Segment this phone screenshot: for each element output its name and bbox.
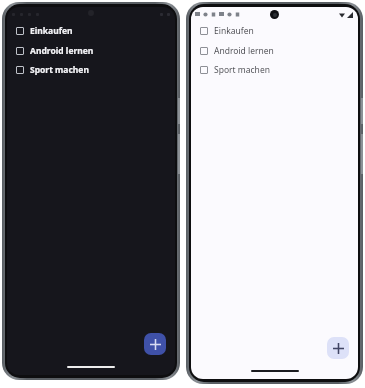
button[interactable]: Sport machen [191, 64, 358, 76]
staticText: Sport machen [214, 64, 270, 76]
button[interactable]: Einkaufen [191, 25, 358, 37]
staticText: Einkaufen [214, 25, 254, 37]
staticText: Android lernen [214, 45, 274, 57]
staticText: Einkaufen [30, 25, 73, 37]
button[interactable]: Einkaufen [7, 25, 175, 37]
button[interactable]: Neue Aufgabe hinzufügen [327, 337, 349, 359]
button[interactable]: Android lernen [7, 45, 175, 57]
button[interactable]: Neue Aufgabe hinzufügen [144, 333, 166, 355]
button[interactable]: Sport machen [7, 64, 175, 76]
staticText: Sport machen [30, 64, 89, 76]
button[interactable]: Android lernen [191, 45, 358, 57]
staticText: Android lernen [30, 45, 94, 57]
